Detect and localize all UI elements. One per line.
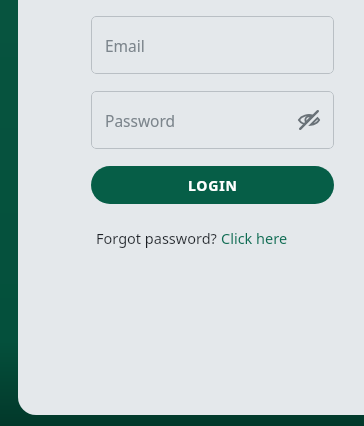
button[interactable]: Password bbox=[91, 91, 334, 149]
staticText: Click here bbox=[221, 228, 288, 248]
staticText: LOGIN bbox=[188, 176, 238, 195]
staticText: Forgot password? bbox=[96, 228, 221, 248]
button[interactable]: Show password bbox=[295, 106, 323, 134]
staticText: Email bbox=[105, 35, 145, 56]
button[interactable]: LOGIN bbox=[91, 166, 334, 204]
button[interactable]: Email bbox=[91, 16, 334, 74]
button[interactable]: Click here bbox=[221, 228, 288, 248]
staticText: Password bbox=[105, 110, 176, 131]
